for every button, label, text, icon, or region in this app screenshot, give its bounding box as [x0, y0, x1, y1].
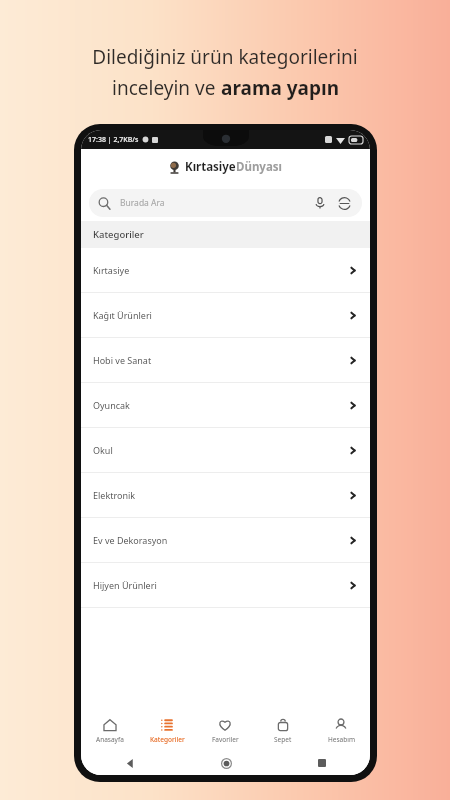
- staticText: Hijyen Ürünleri: [93, 579, 157, 591]
- staticText: Kırtasiye: [185, 159, 236, 175]
- button[interactable]: Geri: [120, 753, 140, 773]
- staticText: Okul: [93, 444, 113, 456]
- staticText: Oyuncak: [93, 399, 130, 411]
- button[interactable]: Elektronik: [81, 473, 370, 517]
- staticText: Hesabım: [328, 735, 355, 744]
- staticText: Elektronik: [93, 489, 136, 501]
- staticText: arama yapın: [221, 75, 339, 101]
- button[interactable]: Kırtasiye: [81, 248, 370, 292]
- staticText: Sepet: [274, 735, 292, 744]
- button[interactable]: Hesabım: [312, 712, 370, 750]
- staticText: Kategoriler: [93, 228, 144, 241]
- button[interactable]: Kategoriler: [138, 712, 196, 750]
- button[interactable]: Favoriler: [196, 712, 254, 750]
- staticText: Hobi ve Sanat: [93, 354, 152, 366]
- staticText: inceleyin ve: [112, 75, 221, 101]
- button[interactable]: Ana ekran: [216, 753, 236, 773]
- button[interactable]: Ev ve Dekorasyon: [81, 518, 370, 562]
- button[interactable]: Sesle ara: [312, 195, 328, 211]
- staticText: 17:38 | 2,7KB/s: [88, 135, 139, 145]
- button[interactable]: Sepet: [254, 712, 312, 750]
- button[interactable]: Kağıt Ürünleri: [81, 293, 370, 337]
- button[interactable]: Görselle ara: [335, 194, 353, 212]
- staticText: Kırtasiye: [93, 264, 130, 276]
- staticText: Ev ve Dekorasyon: [93, 534, 168, 546]
- button[interactable]: Hobi ve Sanat: [81, 338, 370, 382]
- button[interactable]: Son uygulamalar: [312, 753, 332, 773]
- staticText: Burada Ara: [120, 197, 165, 209]
- staticText: Kategoriler: [150, 735, 185, 744]
- staticText: Dilediğiniz ürün kategorilerini: [92, 44, 358, 70]
- button[interactable]: Oyuncak: [81, 383, 370, 427]
- button[interactable]: Anasayfa: [81, 712, 138, 750]
- button[interactable]: Burada Ara: [89, 189, 362, 217]
- staticText: Dünyası: [236, 159, 283, 175]
- staticText: Kağıt Ürünleri: [93, 309, 152, 321]
- staticText: Anasayfa: [96, 735, 124, 744]
- button[interactable]: Okul: [81, 428, 370, 472]
- button[interactable]: Hijyen Ürünleri: [81, 563, 370, 607]
- staticText: Favoriler: [212, 735, 239, 744]
